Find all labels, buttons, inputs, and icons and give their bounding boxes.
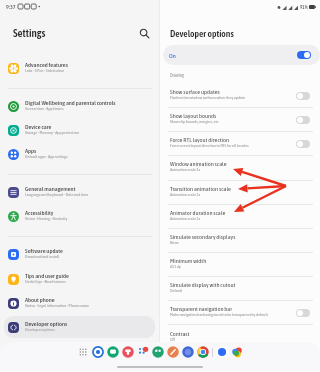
button[interactable]: blue — [182, 346, 194, 358]
staticText: Download and install — [25, 254, 60, 259]
button[interactable]: Force RTL layout direction — [160, 132, 320, 156]
button[interactable]: android — [152, 346, 164, 358]
staticText: Advanced features — [25, 61, 68, 68]
staticText: Digital Wellbeing and parental controls — [25, 99, 116, 106]
button[interactable]: Minimum width — [160, 253, 320, 277]
staticText: Tips and user guide — [25, 272, 69, 279]
button[interactable]: Simulate display with cutout — [160, 277, 320, 301]
staticText: Transparent navigation bar — [170, 305, 233, 312]
button[interactable]: About phone — [4, 292, 155, 314]
staticText: Simulate display with cutout — [170, 281, 236, 288]
staticText: Force screen layout direction to RTL for… — [170, 143, 249, 148]
button[interactable]: Digital Wellbeing and parental controls — [4, 95, 155, 117]
button[interactable]: Software update — [4, 243, 155, 265]
staticText: Default apps • App settings — [25, 154, 68, 159]
button[interactable]: Accessibility — [4, 205, 155, 227]
button[interactable]: On — [163, 45, 320, 65]
staticText: Show layout bounds — [170, 112, 217, 119]
staticText: Language and keyboard • Date and time — [25, 192, 89, 197]
button[interactable]: samsunginternet — [92, 346, 104, 358]
staticText: Useful tips • New features — [25, 279, 66, 284]
staticText: Drawing — [170, 73, 184, 78]
button[interactable]: General management — [4, 181, 155, 203]
staticText: Accessibility — [25, 209, 54, 216]
staticText: Apps — [25, 147, 37, 154]
button[interactable]: messages — [107, 346, 119, 358]
button[interactable]: phone — [122, 346, 134, 358]
staticText: Animator duration scale — [170, 209, 226, 216]
staticText: Simulate secondary displays — [170, 233, 236, 240]
staticText: Labs • S Pen • Side button — [25, 68, 65, 73]
staticText: Status • Legal information • Phone name — [25, 303, 89, 308]
button[interactable]: Transparent navigation bar — [160, 301, 320, 325]
staticText: Transition animation scale — [170, 185, 231, 192]
button[interactable]: Simulate secondary displays — [160, 229, 320, 253]
button[interactable]: compass — [167, 346, 179, 358]
button[interactable]: Device care — [4, 119, 155, 141]
staticText: Contrast — [170, 330, 190, 337]
staticText: Show surface updates — [170, 88, 220, 95]
staticText: Show clip bounds, margins, etc — [170, 119, 219, 124]
staticText: General management — [25, 185, 76, 192]
staticText: Flash entire window surfaces when they u… — [170, 95, 246, 100]
staticText: About phone — [25, 296, 55, 303]
staticText: Storage • Memory • App protection — [25, 130, 79, 135]
staticText: Make navigation bar background color tra… — [170, 312, 268, 317]
staticText: None — [170, 240, 179, 245]
button[interactable]: multi — [137, 346, 149, 358]
button[interactable]: Switch off — [296, 309, 310, 317]
button[interactable]: Search — [138, 27, 151, 40]
staticText: 411 dp — [170, 264, 181, 269]
button[interactable]: gmail — [216, 346, 228, 358]
button[interactable]: Switch off — [296, 140, 310, 148]
staticText: Animation scale 1x — [170, 192, 201, 197]
staticText: Screen time • App timers — [25, 106, 64, 111]
staticText: 91% — [300, 4, 308, 10]
button[interactable]: chrome — [197, 346, 209, 358]
staticText: Developer options — [170, 28, 234, 39]
staticText: Window animation scale — [170, 160, 227, 167]
staticText: Minimum width — [170, 257, 207, 264]
staticText: Settings — [13, 27, 46, 40]
staticText: Animation scale 1x — [170, 167, 201, 172]
button[interactable]: Developer options — [4, 316, 155, 338]
button[interactable]: Switch on — [297, 51, 311, 59]
button[interactable]: Transition animation scale — [160, 181, 320, 205]
button[interactable]: Window animation scale — [160, 156, 320, 180]
button[interactable]: Switch off — [296, 92, 310, 100]
button[interactable]: Contrast — [160, 326, 320, 350]
button[interactable]: Animator duration scale — [160, 205, 320, 229]
button[interactable]: photos — [231, 346, 243, 358]
button[interactable]: Show layout bounds — [160, 108, 320, 132]
staticText: Default — [170, 288, 183, 293]
staticText: Developer options — [25, 320, 68, 327]
button[interactable]: Advanced features — [4, 57, 155, 79]
staticText: Vision • Hearing • Dexterity — [25, 216, 68, 221]
staticText: Animation scale 1x — [170, 216, 201, 221]
staticText: Off — [170, 337, 175, 342]
button[interactable]: Switch off — [296, 116, 310, 124]
button[interactable]: Apps — [4, 143, 155, 165]
staticText: Device care — [25, 123, 52, 130]
button[interactable]: grid — [77, 346, 89, 358]
staticText: On — [169, 52, 176, 59]
staticText: Force RTL layout direction — [170, 136, 230, 143]
staticText: 9:37 — [6, 3, 16, 10]
button[interactable]: Show surface updates — [160, 84, 320, 108]
button[interactable]: Tips and user guide — [4, 268, 155, 290]
staticText: Developer options — [25, 327, 55, 332]
staticText: Software update — [25, 247, 63, 254]
